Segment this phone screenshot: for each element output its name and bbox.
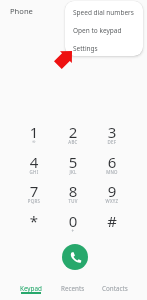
button[interactable]: 2 — [57, 122, 89, 148]
button[interactable]: 1 — [18, 122, 50, 148]
staticText: 0 — [57, 211, 89, 231]
button[interactable]: 5 — [57, 152, 89, 178]
staticText: # — [96, 211, 128, 231]
staticText: ∞ — [18, 139, 50, 144]
staticText: Speed dial numbers — [73, 8, 134, 17]
button[interactable]: 0 — [57, 211, 89, 237]
button[interactable]: Phone — [4, 1, 46, 21]
staticText: 4 — [18, 152, 50, 172]
staticText: 7 — [18, 181, 50, 201]
button[interactable]: 6 — [96, 152, 128, 178]
staticText: + — [57, 228, 89, 234]
staticText: 1 — [18, 122, 50, 142]
button[interactable]: 4 — [18, 152, 50, 178]
staticText: Phone — [10, 6, 33, 16]
staticText: Settings — [73, 44, 98, 53]
button[interactable]: 7 — [18, 181, 50, 207]
button[interactable]: Recents — [52, 277, 94, 300]
button[interactable]: * — [18, 211, 50, 237]
button[interactable]: 3 — [96, 122, 128, 148]
staticText: Open to keypad — [73, 26, 122, 35]
staticText: Recents — [61, 284, 85, 293]
button[interactable]: Settings — [65, 39, 143, 56]
staticText: JKL — [57, 169, 89, 175]
button[interactable]: 9 — [96, 181, 128, 207]
staticText: DEF — [96, 139, 128, 145]
button[interactable]: Contacts — [94, 277, 136, 300]
staticText: Keypad — [20, 284, 42, 293]
staticText: GHI — [18, 169, 50, 175]
staticText: PQRS — [18, 198, 50, 204]
button[interactable]: Speed dial numbers — [65, 3, 143, 21]
staticText: * — [18, 211, 50, 231]
staticText: 5 — [57, 152, 89, 172]
staticText: 6 — [96, 152, 128, 172]
staticText: TUV — [57, 198, 89, 204]
staticText: 9 — [96, 181, 128, 201]
staticText: ABC — [57, 139, 89, 145]
staticText: WXYZ — [96, 198, 128, 204]
button[interactable]: Open to keypad — [65, 21, 143, 39]
staticText: 3 — [96, 122, 128, 142]
button[interactable]: # — [96, 211, 128, 237]
button[interactable]: 8 — [57, 181, 89, 207]
staticText: 8 — [57, 181, 89, 201]
button[interactable]: Call — [62, 244, 88, 270]
staticText: 2 — [57, 122, 89, 142]
button[interactable]: Keypad — [10, 277, 52, 300]
staticText: Contacts — [102, 284, 128, 293]
staticText: MNO — [96, 169, 128, 175]
